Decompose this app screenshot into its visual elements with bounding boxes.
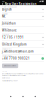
staticText: 12 / 05 / 1991 xyxy=(2,36,24,39)
staticText: First name xyxy=(2,20,9,22)
staticText: Last name xyxy=(2,27,9,29)
button[interactable]: Email address xyxy=(2,47,44,54)
staticText: j.whitmore@mail.com xyxy=(2,50,34,53)
staticText: By continuing you agree to the processin… xyxy=(2,73,43,76)
staticText: New User Registration xyxy=(5,2,37,6)
button[interactable]: Forms xyxy=(19,93,26,100)
staticText: Country xyxy=(2,41,8,43)
button[interactable]: Country xyxy=(2,40,44,47)
staticText: Terms xyxy=(2,70,7,72)
staticText: 9:41 xyxy=(2,0,5,2)
staticText: Mr. xyxy=(2,15,6,18)
button[interactable]: Back xyxy=(2,2,4,5)
staticText: Date of birth xyxy=(2,34,9,36)
button[interactable]: Upload document xyxy=(2,63,18,68)
staticText: Upload document xyxy=(4,65,17,67)
button[interactable]: First name xyxy=(2,19,44,26)
button[interactable]: Preferred language xyxy=(2,5,44,12)
staticText: Mobile number xyxy=(2,55,12,57)
staticText: Whitmore xyxy=(2,29,17,32)
button[interactable]: Home xyxy=(7,93,14,100)
staticText: Preferred language xyxy=(2,6,17,8)
button[interactable]: Salutation xyxy=(2,12,44,19)
button[interactable]: Last name xyxy=(2,26,44,33)
staticText: Jonathan xyxy=(2,22,16,25)
staticText: Email address xyxy=(2,48,12,50)
staticText: English xyxy=(2,8,12,11)
staticText: Salutation xyxy=(2,13,8,15)
button[interactable]: Mobile number xyxy=(2,54,44,61)
button[interactable]: Date of birth xyxy=(2,33,44,40)
button[interactable]: Profile xyxy=(32,93,39,100)
staticText: Reference xyxy=(2,77,10,79)
staticText: Application ID 4821-0097 xyxy=(2,80,18,82)
staticText: United Kingdom xyxy=(2,43,27,46)
staticText: +44 7700 900321 xyxy=(2,57,30,60)
